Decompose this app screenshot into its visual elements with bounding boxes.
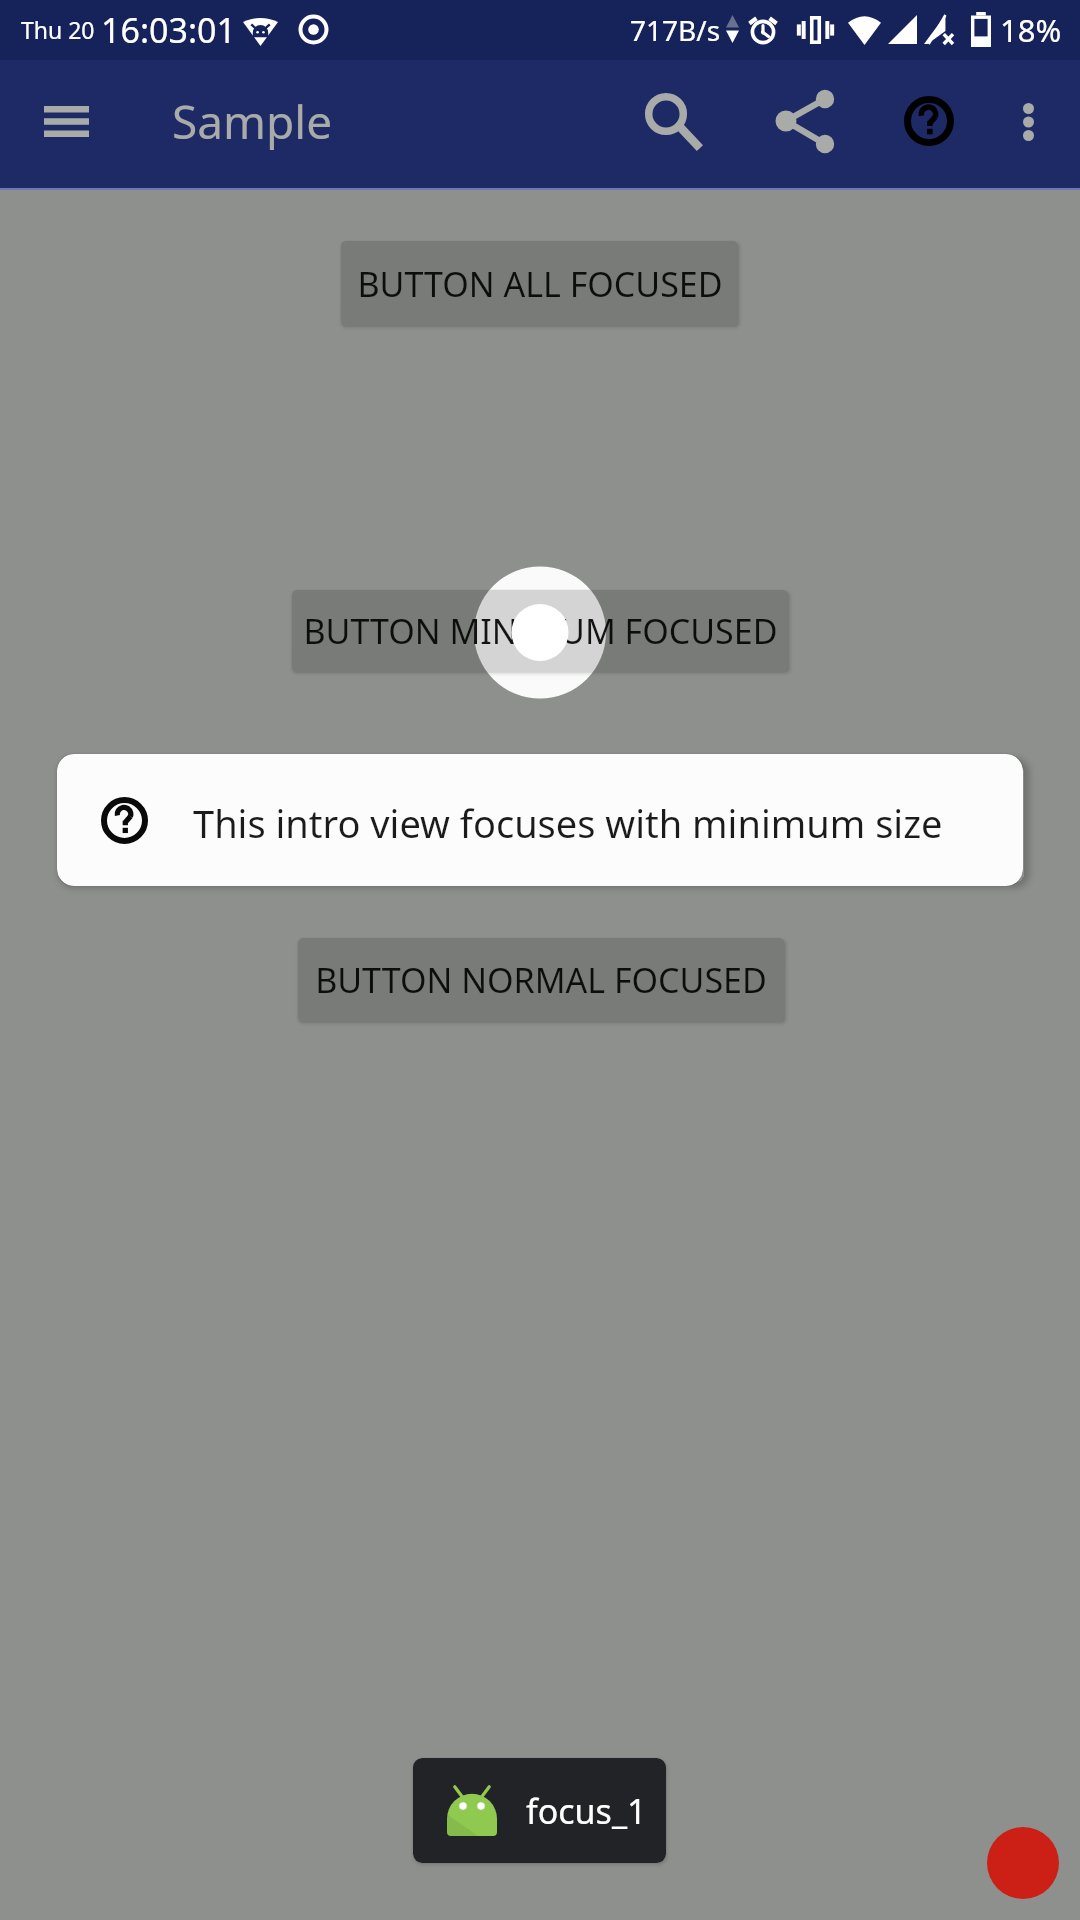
staticText: Sample [172,90,333,153]
button[interactable]: Search [618,66,714,162]
staticText: BUTTON NORMAL FOCUSED [315,957,767,1003]
staticText: This intro view focuses with minimum siz… [193,797,943,849]
staticText: Thu 20 [21,14,95,45]
button[interactable]: Dismiss tutorial overlay [0,0,1080,1920]
staticText: focus_1 [526,1788,647,1834]
button[interactable]: BUTTON NORMAL FOCUSED [298,938,784,1022]
button[interactable]: BUTTON MINIMUM FOCUSED [292,590,788,672]
button[interactable]: BUTTON ALL FOCUSED [341,241,738,326]
button[interactable]: Open navigation drawer [21,78,111,164]
staticText: 16:03:01 [101,7,236,53]
button[interactable]: This intro view focuses with minimum siz… [57,754,1023,886]
staticText: BUTTON MINIMUM FOCUSED [303,608,778,654]
button[interactable]: Share [758,73,854,169]
button[interactable]: More options [984,78,1072,166]
button[interactable]: Help [881,73,977,169]
button[interactable]: Focused button [474,567,606,699]
button[interactable]: focus_1 [413,1758,666,1863]
button[interactable]: Record [987,1827,1059,1899]
staticText: BUTTON ALL FOCUSED [357,261,723,307]
staticText: 717B/s [630,11,721,49]
staticText: 18% [1000,9,1062,51]
